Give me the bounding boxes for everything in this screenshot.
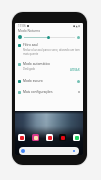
staticText: Modo automático [23,62,51,66]
button[interactable]: Mais configurações [15,88,83,99]
staticText: Reduz a luz azul para o sono, ativando u… [23,48,80,56]
staticText: ● ▲ ▮ [73,24,80,27]
staticText: Mais configurações [23,90,53,94]
button[interactable]: Photos [46,134,53,141]
button[interactable]: ATIVAR [70,68,80,72]
staticText: 17:06 [18,24,26,28]
button[interactable]: Modo escuro [15,77,83,88]
button[interactable]: Netflix [59,134,66,141]
button[interactable]: Modo automático [15,60,83,77]
button[interactable]: YouTube [18,134,25,141]
button[interactable]: Filtro azul [15,41,83,60]
other: Toggle [77,80,80,83]
staticText: Modo escuro [23,79,43,83]
staticText: Filtro azul [23,43,38,47]
button[interactable]: WhatsApp [73,134,80,141]
button[interactable]: Instagram [32,134,39,141]
staticText: Desligado [23,67,36,71]
staticText: Modo Noturno [18,29,41,33]
button[interactable]: Search [19,147,79,155]
